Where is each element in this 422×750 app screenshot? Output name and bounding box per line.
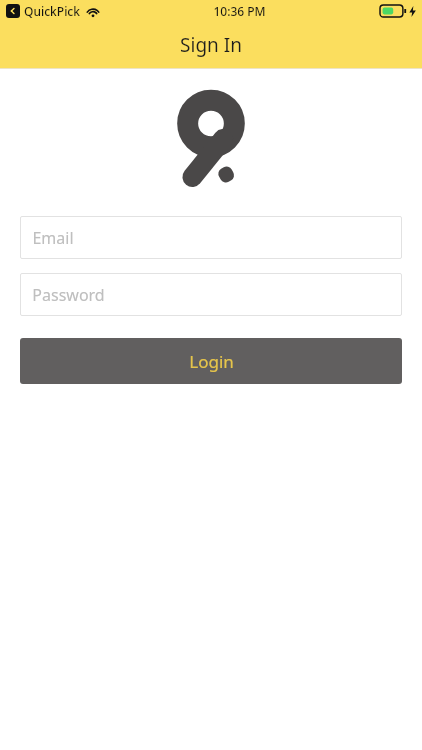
button[interactable]: Password [20,273,402,316]
staticText: QuickPick [24,3,80,19]
button[interactable]: Email [20,216,402,259]
staticText: Login [189,350,234,373]
staticText: Password [32,284,105,306]
button[interactable]: Login [20,338,402,384]
staticText: Email [32,227,74,249]
staticText: 10:36 PM [213,3,266,19]
staticText: Sign In [180,32,242,58]
button[interactable]: Back to QuickPick [6,4,20,18]
